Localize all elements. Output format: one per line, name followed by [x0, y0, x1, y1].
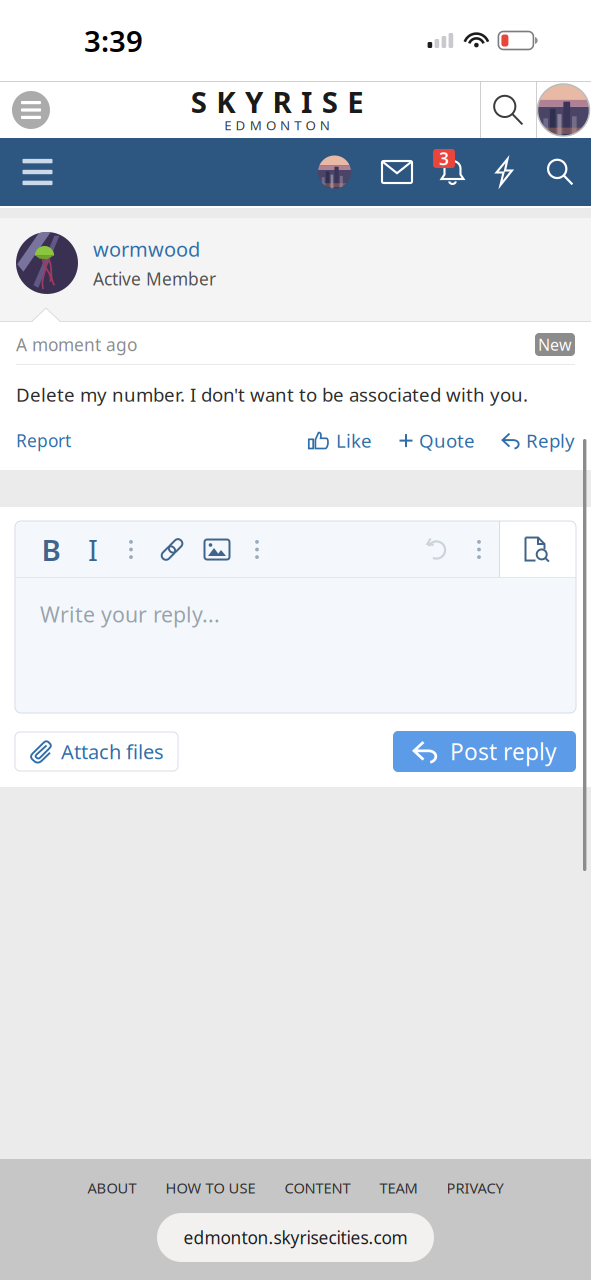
- button[interactable]: Undo: [415, 521, 459, 577]
- staticText: TEAM: [379, 1178, 417, 1197]
- staticText: Reply: [526, 428, 575, 453]
- staticText: Active Member: [93, 267, 216, 290]
- button[interactable]: Post reply: [393, 731, 576, 772]
- button[interactable]: Search site: [480, 82, 536, 138]
- button[interactable]: edmonton.skyrisecities.com: [157, 1213, 434, 1262]
- button[interactable]: What's new: [479, 138, 529, 206]
- staticText: E D M O N T O N: [224, 116, 330, 134]
- staticText: A moment ago: [16, 333, 137, 356]
- button[interactable]: Alerts, 3 unread: [426, 138, 479, 206]
- button[interactable]: Your profile: [301, 138, 368, 206]
- staticText: 3:39: [84, 21, 143, 60]
- button[interactable]: Like: [308, 428, 372, 453]
- button[interactable]: Reply: [475, 428, 575, 453]
- staticText: PRIVACY: [446, 1178, 503, 1197]
- staticText: Post reply: [450, 736, 557, 766]
- staticText: New: [538, 334, 572, 355]
- staticText: Delete my number. I don't want to be ass…: [16, 382, 528, 407]
- staticText: B: [41, 530, 60, 569]
- button[interactable]: HOW TO USE: [165, 1178, 255, 1197]
- staticText: Attach files: [61, 738, 164, 765]
- staticText: 3: [439, 147, 449, 170]
- staticText: edmonton.skyrisecities.com: [183, 1226, 407, 1249]
- staticText: Like: [336, 428, 372, 453]
- button[interactable]: Inbox: [368, 138, 426, 206]
- staticText: CONTENT: [284, 1178, 350, 1197]
- staticText: wormwood: [93, 236, 200, 262]
- button[interactable]: CONTENT: [284, 1178, 350, 1197]
- staticText: ABOUT: [87, 1178, 136, 1197]
- button[interactable]: More actions: [459, 521, 499, 577]
- button[interactable]: Preview: [499, 521, 576, 578]
- button[interactable]: wormwood: [93, 236, 200, 262]
- button[interactable]: More insert options: [239, 521, 275, 577]
- staticText: HOW TO USE: [165, 1178, 255, 1197]
- button[interactable]: Insert link: [149, 521, 195, 577]
- button[interactable]: Reader menu: [0, 82, 62, 138]
- button[interactable]: PRIVACY: [446, 1178, 503, 1197]
- button[interactable]: Report: [16, 429, 71, 452]
- button[interactable]: I: [73, 521, 113, 577]
- staticText: Quote: [419, 428, 475, 453]
- button[interactable]: Your account: [536, 82, 591, 138]
- button[interactable]: B: [29, 521, 73, 577]
- button[interactable]: ABOUT: [87, 1178, 136, 1197]
- staticText: Report: [16, 429, 71, 452]
- staticText: S K Y R I S E: [191, 82, 363, 121]
- button[interactable]: TEAM: [379, 1178, 417, 1197]
- staticText: I: [88, 530, 98, 569]
- button[interactable]: Attach files: [15, 732, 178, 771]
- button[interactable]: Search: [529, 138, 591, 206]
- button[interactable]: Quote: [372, 428, 475, 453]
- button[interactable]: Open menu: [0, 138, 75, 206]
- button[interactable]: More formatting: [113, 521, 149, 577]
- staticText: Write your reply...: [40, 600, 220, 628]
- button[interactable]: Insert image: [195, 521, 239, 577]
